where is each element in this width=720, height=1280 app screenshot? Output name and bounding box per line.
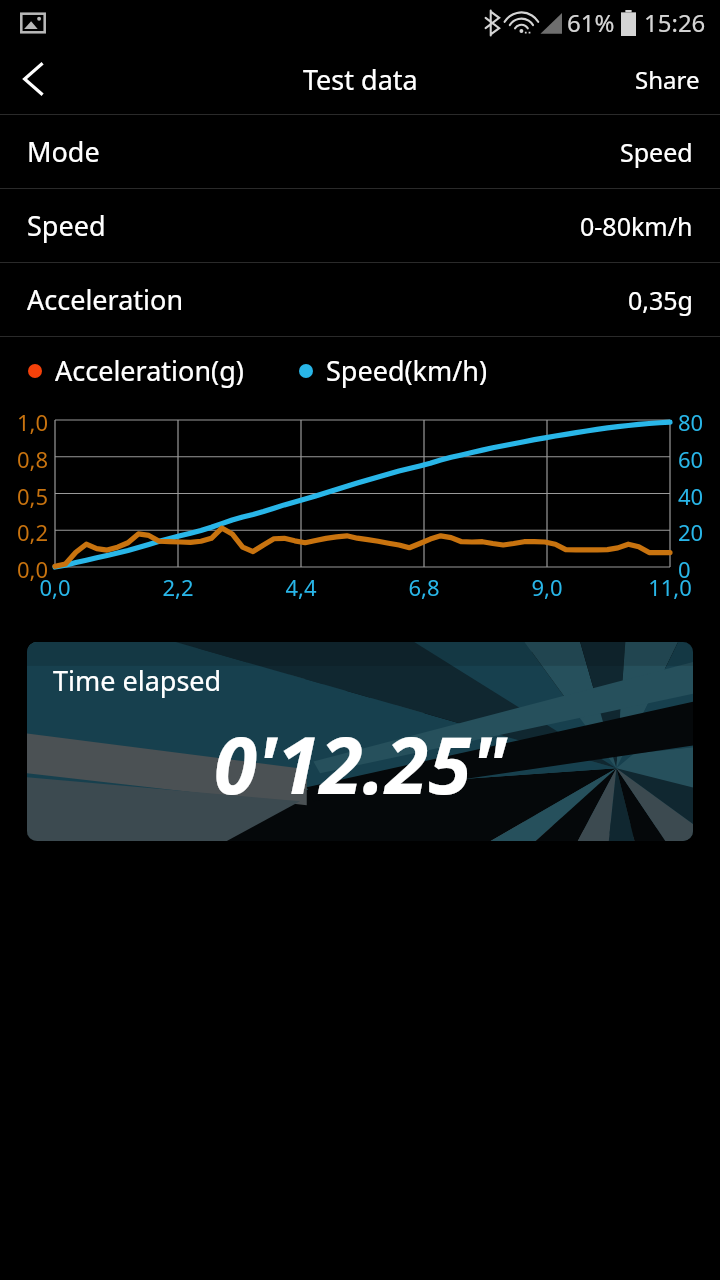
- staticText: 6,8: [394, 572, 454, 602]
- staticText: 0,0: [25, 572, 85, 602]
- staticText: Speed(km/h): [326, 352, 488, 389]
- staticText: 20: [678, 517, 704, 547]
- button[interactable]: Speed: [0, 189, 720, 262]
- staticText: 2,2: [148, 572, 208, 602]
- staticText: 0,8: [0, 444, 48, 474]
- staticText: Mode: [27, 133, 100, 170]
- button[interactable]: Share: [615, 49, 720, 110]
- staticText: Share: [635, 63, 700, 96]
- staticText: 0: [678, 554, 691, 584]
- staticText: 1,0: [0, 407, 48, 437]
- staticText: Acceleration(g): [55, 352, 244, 389]
- staticText: Speed: [27, 207, 106, 244]
- button[interactable]: Back: [0, 46, 66, 112]
- staticText: 61%: [567, 6, 615, 39]
- button[interactable]: Time elapsed: [27, 642, 693, 841]
- staticText: 0,35g: [628, 283, 693, 317]
- staticText: 60: [678, 444, 704, 474]
- staticText: 4,4: [271, 572, 331, 602]
- staticText: 0,0: [0, 554, 48, 584]
- staticText: 0,2: [0, 517, 48, 547]
- staticText: Test data: [303, 61, 418, 98]
- staticText: 9,0: [517, 572, 577, 602]
- staticText: Speed: [620, 135, 693, 169]
- staticText: 0,5: [0, 481, 48, 511]
- staticText: 40: [678, 481, 704, 511]
- staticText: 0-80km/h: [580, 209, 693, 243]
- staticText: 80: [678, 407, 704, 437]
- staticText: Time elapsed: [53, 662, 222, 699]
- staticText: 15:26: [644, 6, 706, 39]
- button[interactable]: Mode: [0, 115, 720, 188]
- staticText: 0'12.25": [214, 711, 507, 817]
- staticText: Acceleration: [27, 281, 184, 318]
- button[interactable]: Acceleration: [0, 263, 720, 336]
- staticText: 11,0: [640, 572, 700, 602]
